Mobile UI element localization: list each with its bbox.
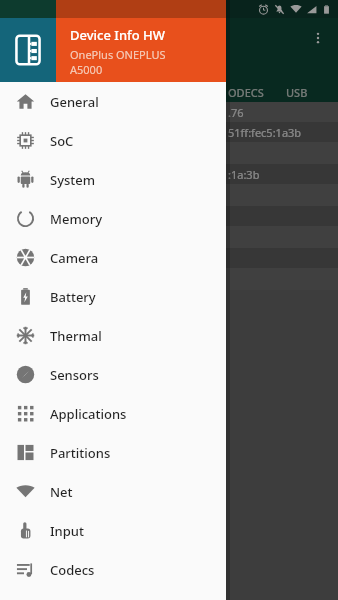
button[interactable]: More options [304,24,332,52]
staticText: Memory [50,210,103,228]
staticText: .76 [228,105,244,120]
button[interactable]: Input [0,511,226,550]
button[interactable]: Thermal [0,316,226,355]
staticText: A5000 [70,62,103,77]
staticText: ODECS [228,85,264,100]
button[interactable]: Battery [0,277,226,316]
staticText: Sensors [50,366,99,384]
staticText: General [50,93,99,111]
staticText: System [50,171,96,189]
button[interactable]: SoC [0,121,226,160]
staticText: SoC [50,132,74,150]
staticText: Input [50,522,84,540]
staticText: Net [50,483,73,501]
button[interactable]: Applications [0,394,226,433]
button[interactable]: Partitions [0,433,226,472]
staticText: USB [286,85,308,100]
staticText: Partitions [50,444,111,462]
staticText: Codecs [50,561,95,579]
button[interactable]: Sensors [0,355,226,394]
button[interactable]: System [0,160,226,199]
button[interactable]: Camera [0,238,226,277]
button[interactable]: Codecs [0,550,226,589]
button[interactable]: Net [0,472,226,511]
staticText: OnePlus ONEPLUS [70,47,166,62]
button[interactable]: Memory [0,199,226,238]
staticText: Thermal [50,327,102,345]
staticText: Camera [50,249,99,267]
staticText: 51ff:fec5:1a3b [228,125,302,140]
staticText: Battery [50,288,96,306]
button[interactable]: General [0,82,226,121]
button[interactable]: Close navigation drawer [0,0,338,600]
staticText: Applications [50,405,127,423]
staticText: :1a:3b [228,167,260,182]
staticText: Device Info HW [70,26,165,44]
